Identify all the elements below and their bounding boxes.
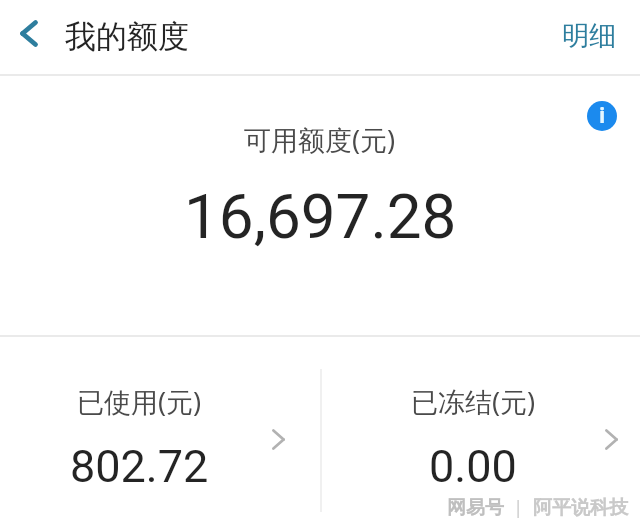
button[interactable]: 已使用(元) [0, 337, 319, 528]
staticText: i [599, 101, 606, 130]
staticText: 可用额度(元) [244, 121, 396, 158]
staticText: 已使用(元) [77, 383, 202, 420]
staticText: 0.00 [429, 440, 517, 493]
staticText: 阿平说科技 [533, 496, 628, 520]
staticText: 16,697.28 [184, 180, 457, 253]
button[interactable]: 已冻结(元) [321, 337, 640, 528]
staticText: 明细 [562, 19, 616, 53]
staticText: 802.72 [70, 440, 209, 493]
button[interactable]: 明细 [540, 0, 640, 73]
staticText: 我的额度 [65, 17, 189, 56]
button[interactable]: Info [583, 97, 620, 134]
staticText: 已冻结(元) [411, 383, 536, 420]
staticText: 网易号 [447, 496, 504, 520]
staticText: | [504, 495, 533, 520]
button[interactable]: Back [0, 0, 58, 73]
